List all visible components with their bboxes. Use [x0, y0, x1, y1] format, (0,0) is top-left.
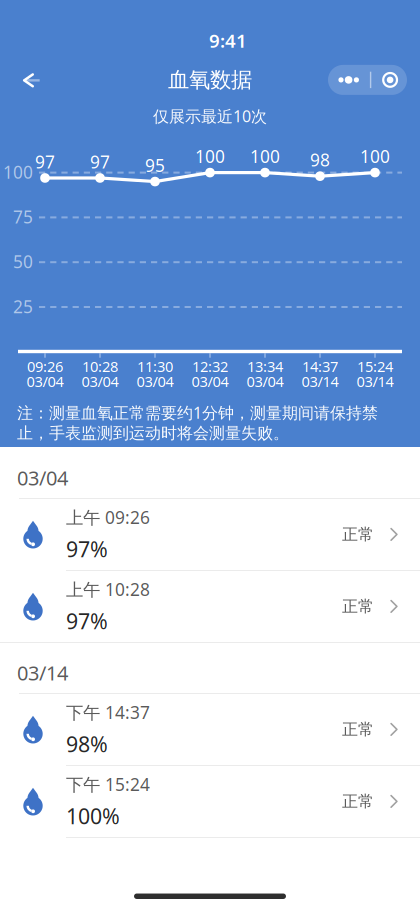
staticText: 15:24 [357, 357, 393, 376]
staticText: 75 [13, 205, 33, 228]
staticText: 03/04 [26, 372, 63, 391]
staticText: 9:41 [209, 28, 247, 53]
staticText: 12:32 [192, 357, 228, 376]
button[interactable]: 下午 15:24 [0, 766, 420, 837]
staticText: 100 [360, 145, 390, 168]
staticText: 03/14 [356, 372, 393, 391]
staticText: 下午 14:37 [66, 701, 150, 724]
staticText: 血氧数据 [168, 67, 252, 93]
staticText: 上午 10:28 [66, 578, 150, 601]
staticText: 13:34 [247, 357, 283, 376]
staticText: 25 [13, 295, 33, 318]
button[interactable]: 上午 09:26 [0, 499, 420, 570]
staticText: 03/14 [17, 659, 68, 686]
staticText: 97 [35, 150, 55, 173]
staticText: 下午 15:24 [66, 773, 150, 796]
staticText: 正常 [342, 597, 374, 616]
staticText: 正常 [342, 720, 374, 739]
staticText: 100 [195, 145, 225, 168]
staticText: 上午 09:26 [66, 506, 150, 529]
staticText: 100 [250, 145, 280, 168]
staticText: 03/04 [246, 372, 283, 391]
staticText: 97% [66, 607, 108, 635]
button[interactable]: 上午 10:28 [0, 571, 420, 642]
staticText: 03/14 [301, 372, 338, 391]
staticText: 03/04 [81, 372, 118, 391]
staticText: 98% [66, 730, 108, 758]
staticText: 注：测量血氧正常需要约1分钟，测量期间请保持禁止，手表监测到运动时将会测量失败。 [17, 402, 378, 443]
staticText: 仅展示最近10次 [153, 105, 267, 127]
staticText: 100 [3, 160, 33, 183]
staticText: 50 [13, 250, 33, 273]
staticText: 03/04 [17, 464, 68, 491]
button[interactable]: 更多 [328, 65, 407, 95]
staticText: 03/04 [191, 372, 228, 391]
button[interactable]: 返回 [9, 59, 53, 101]
staticText: 09:26 [27, 357, 63, 376]
staticText: 正常 [342, 792, 374, 811]
staticText: 100% [66, 802, 120, 830]
button[interactable]: 下午 14:37 [0, 694, 420, 765]
staticText: 97% [66, 535, 108, 563]
staticText: 97 [90, 150, 110, 173]
staticText: 03/04 [136, 372, 173, 391]
staticText: 11:30 [137, 357, 173, 376]
staticText: 95 [145, 154, 165, 177]
staticText: 10:28 [82, 357, 118, 376]
staticText: 14:37 [302, 357, 338, 376]
staticText: 正常 [342, 525, 374, 544]
staticText: 98 [310, 148, 330, 171]
